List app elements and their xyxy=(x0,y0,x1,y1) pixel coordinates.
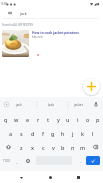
staticText: x xyxy=(31,144,34,151)
button[interactable]: q xyxy=(0,112,11,126)
button[interactable]: ?123 xyxy=(0,154,13,168)
staticText: g xyxy=(51,130,55,137)
button[interactable]: Google search xyxy=(4,102,9,107)
staticText: j xyxy=(72,130,74,137)
button[interactable]: s xyxy=(16,126,27,140)
button[interactable]: v xyxy=(48,140,58,154)
staticText: h xyxy=(61,130,65,137)
button[interactable]: How to cook jacket potatoes xyxy=(0,28,103,59)
button[interactable]: Shift xyxy=(0,140,16,154)
button[interactable]: Back xyxy=(16,172,26,183)
button[interactable]: m xyxy=(78,140,88,154)
button[interactable]: a xyxy=(5,126,16,140)
staticText: Jack xyxy=(48,103,54,107)
staticText: . xyxy=(80,159,82,164)
staticText: a xyxy=(9,130,13,137)
button[interactable]: Emoji xyxy=(23,154,32,168)
button[interactable]: Voice search xyxy=(94,102,98,107)
staticText: How to cook jacket potatoes xyxy=(32,30,79,34)
staticText: y xyxy=(57,116,60,123)
staticText: bbc.com xyxy=(32,35,43,39)
button[interactable]: w xyxy=(11,112,22,126)
button[interactable]: b xyxy=(58,140,68,154)
button[interactable]: x xyxy=(27,140,38,154)
staticText: p xyxy=(96,116,100,123)
staticText: s xyxy=(20,130,23,137)
button[interactable]: d xyxy=(27,126,38,140)
staticText: u xyxy=(66,116,70,123)
staticText: f xyxy=(42,130,44,137)
button[interactable]: Backspace xyxy=(88,140,103,154)
button[interactable]: h xyxy=(58,126,68,140)
staticText: z xyxy=(20,144,23,151)
staticText: jack xyxy=(20,11,27,16)
staticText: v xyxy=(52,144,55,151)
button[interactable]: t xyxy=(43,112,53,126)
staticText: n xyxy=(71,144,75,151)
staticText: k xyxy=(81,130,85,137)
button[interactable]: z xyxy=(16,140,27,154)
button[interactable]: p xyxy=(93,112,103,126)
staticText: w xyxy=(14,116,19,123)
staticText: q xyxy=(4,116,8,123)
button[interactable]: Search xyxy=(86,156,100,165)
button[interactable]: j xyxy=(68,126,78,140)
button[interactable]: Menu xyxy=(1,7,100,18)
staticText: t xyxy=(47,116,50,123)
button[interactable]: , xyxy=(12,154,21,168)
staticText: c xyxy=(42,144,45,151)
button[interactable]: r xyxy=(33,112,43,126)
button[interactable]: i xyxy=(73,112,83,126)
staticText: , xyxy=(16,159,18,164)
staticText: r xyxy=(37,116,40,123)
staticText: m xyxy=(80,144,86,151)
staticText: l xyxy=(92,130,94,137)
staticText: ?123 xyxy=(3,159,10,163)
staticText: d xyxy=(31,130,35,137)
button[interactable]: f xyxy=(38,126,48,140)
button[interactable]: g xyxy=(48,126,58,140)
button[interactable]: u xyxy=(63,112,73,126)
staticText: 9:56 xyxy=(1,2,8,6)
button[interactable]: Home xyxy=(45,172,55,183)
button[interactable]: n xyxy=(68,140,78,154)
staticText: e xyxy=(26,116,30,123)
button[interactable]: k xyxy=(78,126,88,140)
staticText: jacket xyxy=(74,103,83,107)
button[interactable]: o xyxy=(83,112,93,126)
button[interactable]: y xyxy=(53,112,63,126)
staticText: o xyxy=(86,116,90,123)
button[interactable]: c xyxy=(38,140,48,154)
staticText: jack xyxy=(16,103,22,107)
button[interactable]: e xyxy=(22,112,33,126)
staticText: b xyxy=(61,144,65,151)
staticText: Found in ALL MY RECIPES xyxy=(2,23,33,27)
button[interactable]: l xyxy=(88,126,98,140)
button[interactable]: Recent apps xyxy=(73,172,83,183)
button[interactable]: Add recipe xyxy=(82,77,101,96)
staticText: i xyxy=(77,116,79,123)
